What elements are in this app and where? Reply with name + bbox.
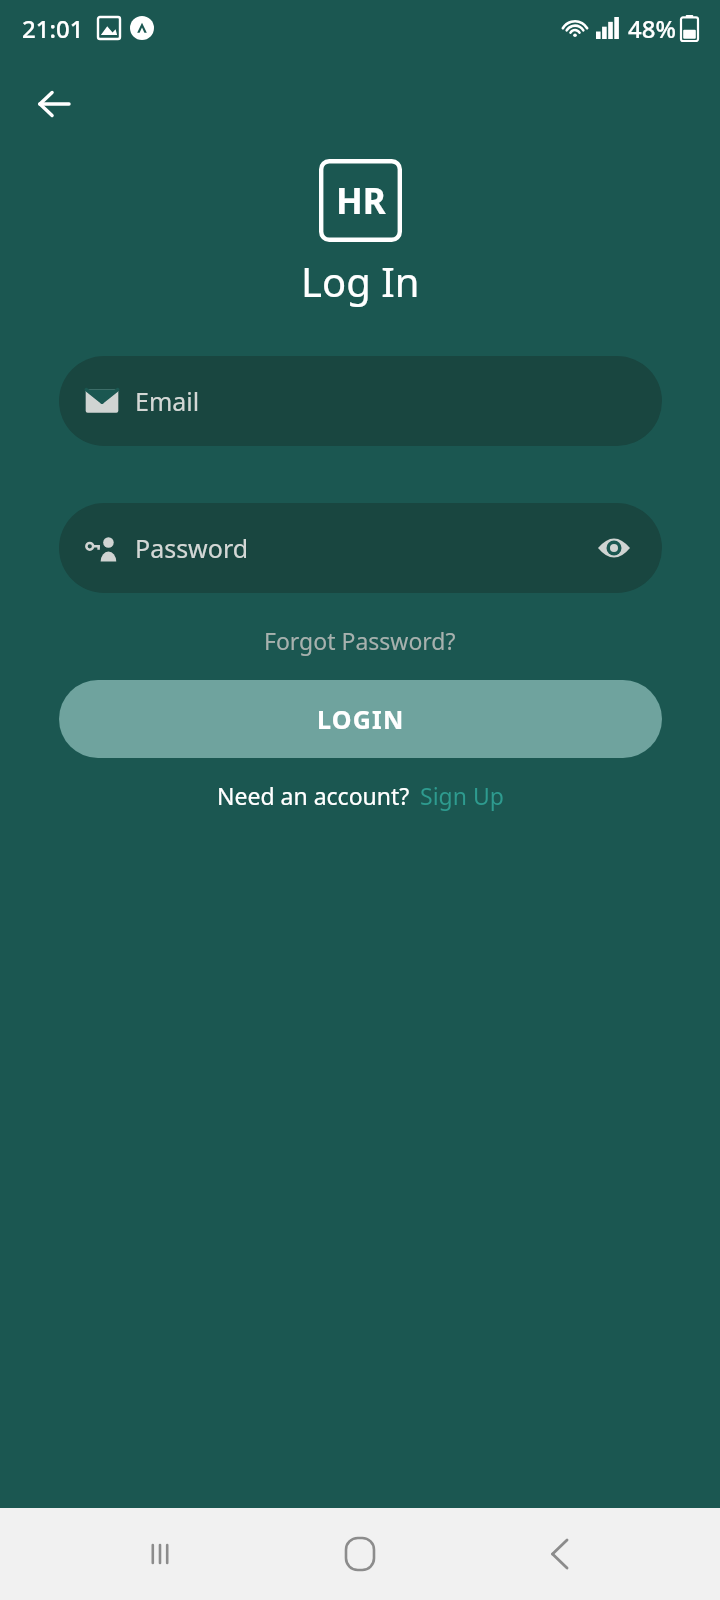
staticText: 48%: [628, 12, 676, 45]
button[interactable]: Home: [320, 1514, 400, 1594]
button[interactable]: Password: [59, 503, 662, 593]
button[interactable]: Email: [59, 356, 662, 446]
button[interactable]: Show password: [592, 526, 636, 570]
button[interactable]: Back: [24, 74, 84, 134]
staticText: HR: [336, 177, 386, 225]
staticText: Password: [135, 531, 249, 565]
staticText: Need an account?: [217, 780, 410, 811]
button[interactable]: Forgot Password?: [250, 617, 470, 664]
staticText: Log In: [301, 254, 420, 308]
staticText: Sign Up: [420, 780, 504, 811]
staticText: Email: [135, 384, 200, 418]
button[interactable]: Recents: [120, 1514, 200, 1594]
staticText: LOGIN: [317, 702, 405, 736]
button[interactable]: Back: [520, 1514, 600, 1594]
staticText: 21:01: [22, 12, 84, 45]
button[interactable]: Sign Up: [420, 780, 504, 811]
staticText: Forgot Password?: [264, 625, 456, 656]
button[interactable]: LOGIN: [59, 680, 662, 758]
